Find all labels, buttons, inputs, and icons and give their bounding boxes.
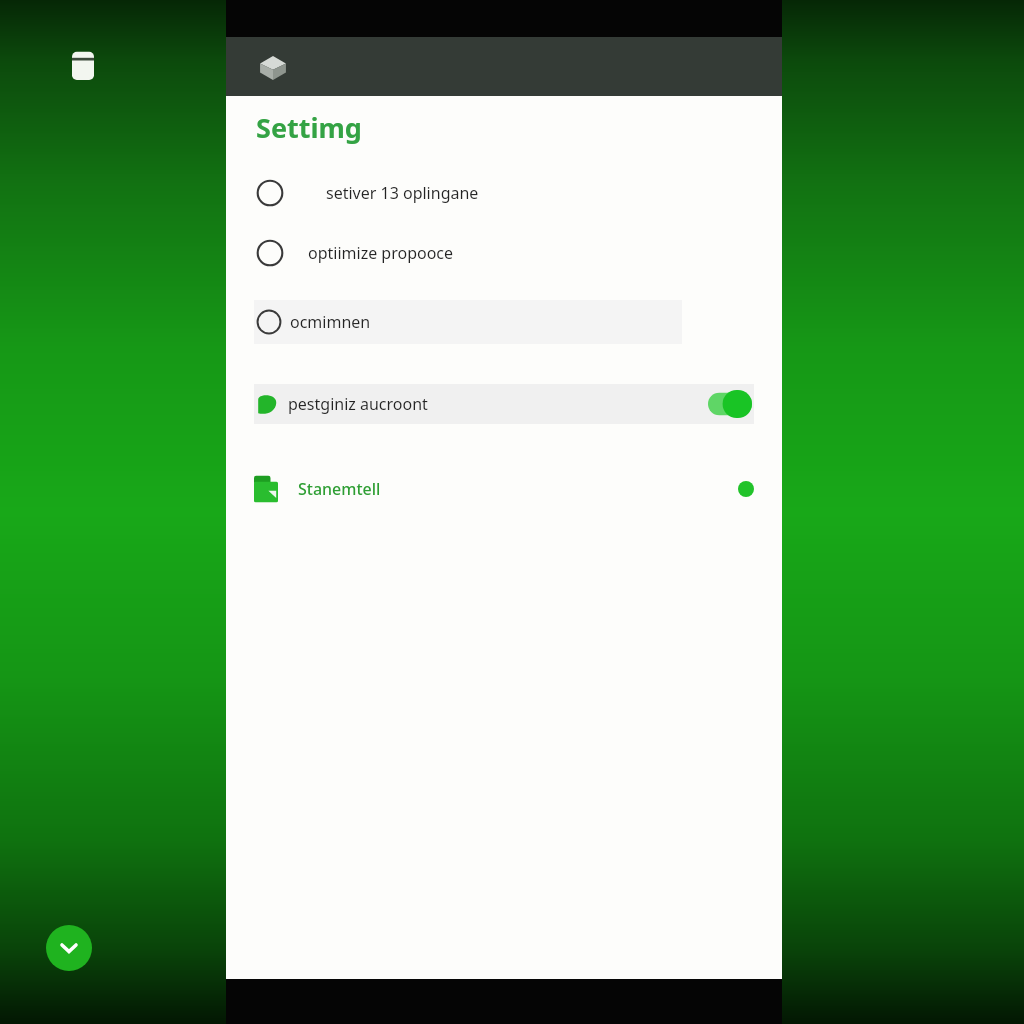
button[interactable]: ocmimnen <box>254 300 682 344</box>
button[interactable]: Toggle <box>708 390 752 418</box>
button[interactable]: optiimize propooce <box>226 230 782 276</box>
button[interactable]: setiver 13 oplingane <box>226 170 782 216</box>
button[interactable]: pestginiz aucroont <box>254 384 754 424</box>
staticText: pestginiz aucroont <box>288 393 428 415</box>
button[interactable]: Stanemtell <box>254 466 754 512</box>
button[interactable]: Expand <box>46 925 92 971</box>
staticText: ocmimnen <box>290 311 371 333</box>
staticText: setiver 13 oplingane <box>326 182 479 204</box>
staticText: optiimize propooce <box>308 242 454 264</box>
button[interactable]: Battery <box>72 50 94 80</box>
staticText: Settimg <box>256 109 362 146</box>
button[interactable]: Status <box>738 481 754 497</box>
button[interactable]: App logo <box>256 50 290 84</box>
staticText: Stanemtell <box>298 478 381 500</box>
